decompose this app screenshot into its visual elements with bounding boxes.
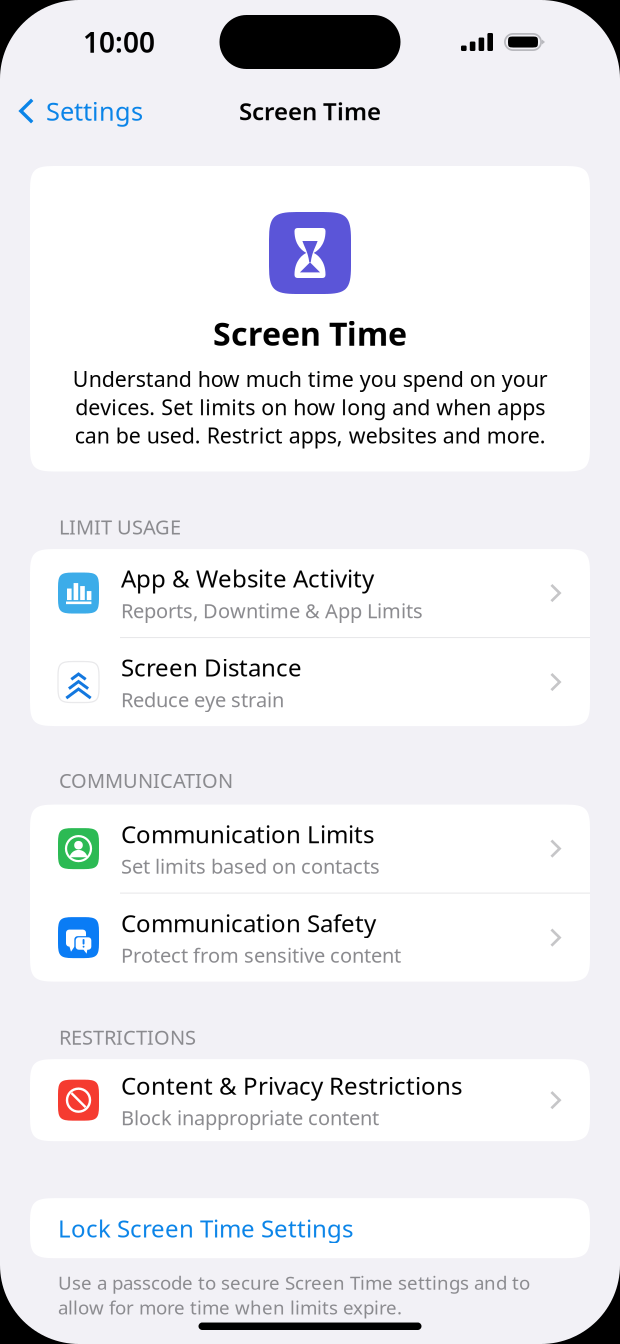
staticText: Reduce eye strain [121, 686, 284, 713]
staticText: Reports, Downtime & App Limits [121, 597, 423, 624]
staticText: Content & Privacy Restrictions [121, 1069, 462, 1101]
staticText: Screen Time [213, 312, 407, 354]
staticText: Screen Distance [121, 651, 302, 683]
staticText: Settings [46, 94, 143, 128]
staticText: Block inappropriate content [121, 1104, 379, 1131]
staticText: Understand how much time you spend on yo… [72, 364, 547, 449]
staticText: Lock Screen Time Settings [58, 1212, 353, 1244]
button[interactable]: App & Website Activity [30, 549, 590, 637]
button[interactable]: Lock Screen Time Settings [0, 1198, 620, 1258]
staticText: 10:00 [83, 23, 155, 61]
button[interactable]: Communication Safety [30, 894, 590, 982]
staticText: RESTRICTIONS [59, 1024, 196, 1050]
staticText: LIMIT USAGE [59, 513, 181, 540]
staticText: Communication Limits [121, 818, 374, 850]
button[interactable]: Content & Privacy Restrictions [30, 1056, 590, 1144]
staticText: COMMUNICATION [59, 767, 233, 794]
button[interactable]: Communication Limits [30, 805, 590, 893]
staticText: Screen Time [239, 95, 381, 127]
staticText: Communication Safety [121, 907, 376, 939]
staticText: Protect from sensitive content [121, 942, 401, 968]
staticText: App & Website Activity [121, 562, 374, 594]
button[interactable]: Screen Distance [30, 638, 590, 726]
button[interactable]: Settings [0, 85, 143, 137]
staticText: Use a passcode to secure Screen Time set… [58, 1270, 530, 1320]
staticText: Set limits based on contacts [121, 853, 380, 879]
